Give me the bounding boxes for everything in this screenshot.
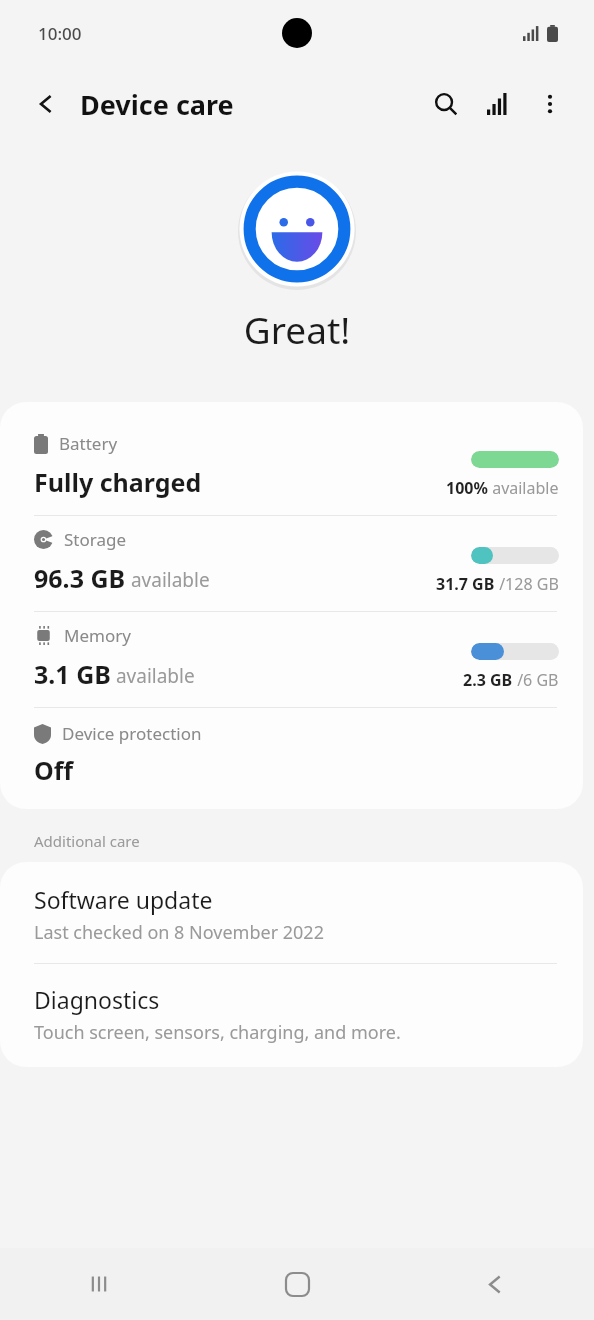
button[interactable]: Recent apps: [63, 1248, 135, 1320]
staticText: Additional care: [34, 831, 140, 851]
staticText: Device care: [80, 86, 234, 123]
staticText: Fully charged: [34, 465, 202, 499]
staticText: Last checked on 8 November 2022: [34, 920, 324, 945]
staticText: Great!: [0, 304, 594, 354]
button[interactable]: Back: [24, 81, 70, 127]
staticText: /6 GB: [513, 669, 559, 691]
staticText: 3.1 GB: [34, 657, 111, 691]
staticText: Storage: [64, 528, 127, 551]
staticText: Off: [34, 753, 74, 787]
button[interactable]: Back: [459, 1248, 531, 1320]
staticText: Device protection: [62, 722, 202, 745]
staticText: Software update: [34, 884, 213, 915]
button[interactable]: Battery: [0, 420, 583, 515]
button[interactable]: Storage: [0, 516, 583, 611]
button[interactable]: Home: [261, 1248, 333, 1320]
button[interactable]: Memory: [0, 612, 583, 707]
staticText: 10:00: [38, 22, 82, 45]
staticText: 31.7 GB: [436, 573, 495, 595]
staticText: 2.3 GB: [463, 669, 513, 691]
staticText: Memory: [64, 624, 131, 647]
staticText: 100%: [446, 477, 488, 499]
button[interactable]: Search: [420, 78, 472, 130]
staticText: Touch screen, sensors, charging, and mor…: [34, 1020, 401, 1045]
button[interactable]: Diagnostics: [0, 964, 583, 1067]
button[interactable]: Software update: [0, 862, 583, 963]
staticText: 96.3 GB: [34, 561, 126, 595]
staticText: available: [126, 567, 210, 593]
staticText: available: [111, 663, 195, 689]
staticText: Battery: [59, 432, 118, 455]
button[interactable]: More options: [524, 78, 576, 130]
button[interactable]: Usage statistics: [472, 78, 524, 130]
button[interactable]: Device protection: [0, 708, 583, 809]
staticText: /128 GB: [495, 573, 559, 595]
staticText: Diagnostics: [34, 984, 160, 1015]
staticText: available: [488, 477, 559, 499]
